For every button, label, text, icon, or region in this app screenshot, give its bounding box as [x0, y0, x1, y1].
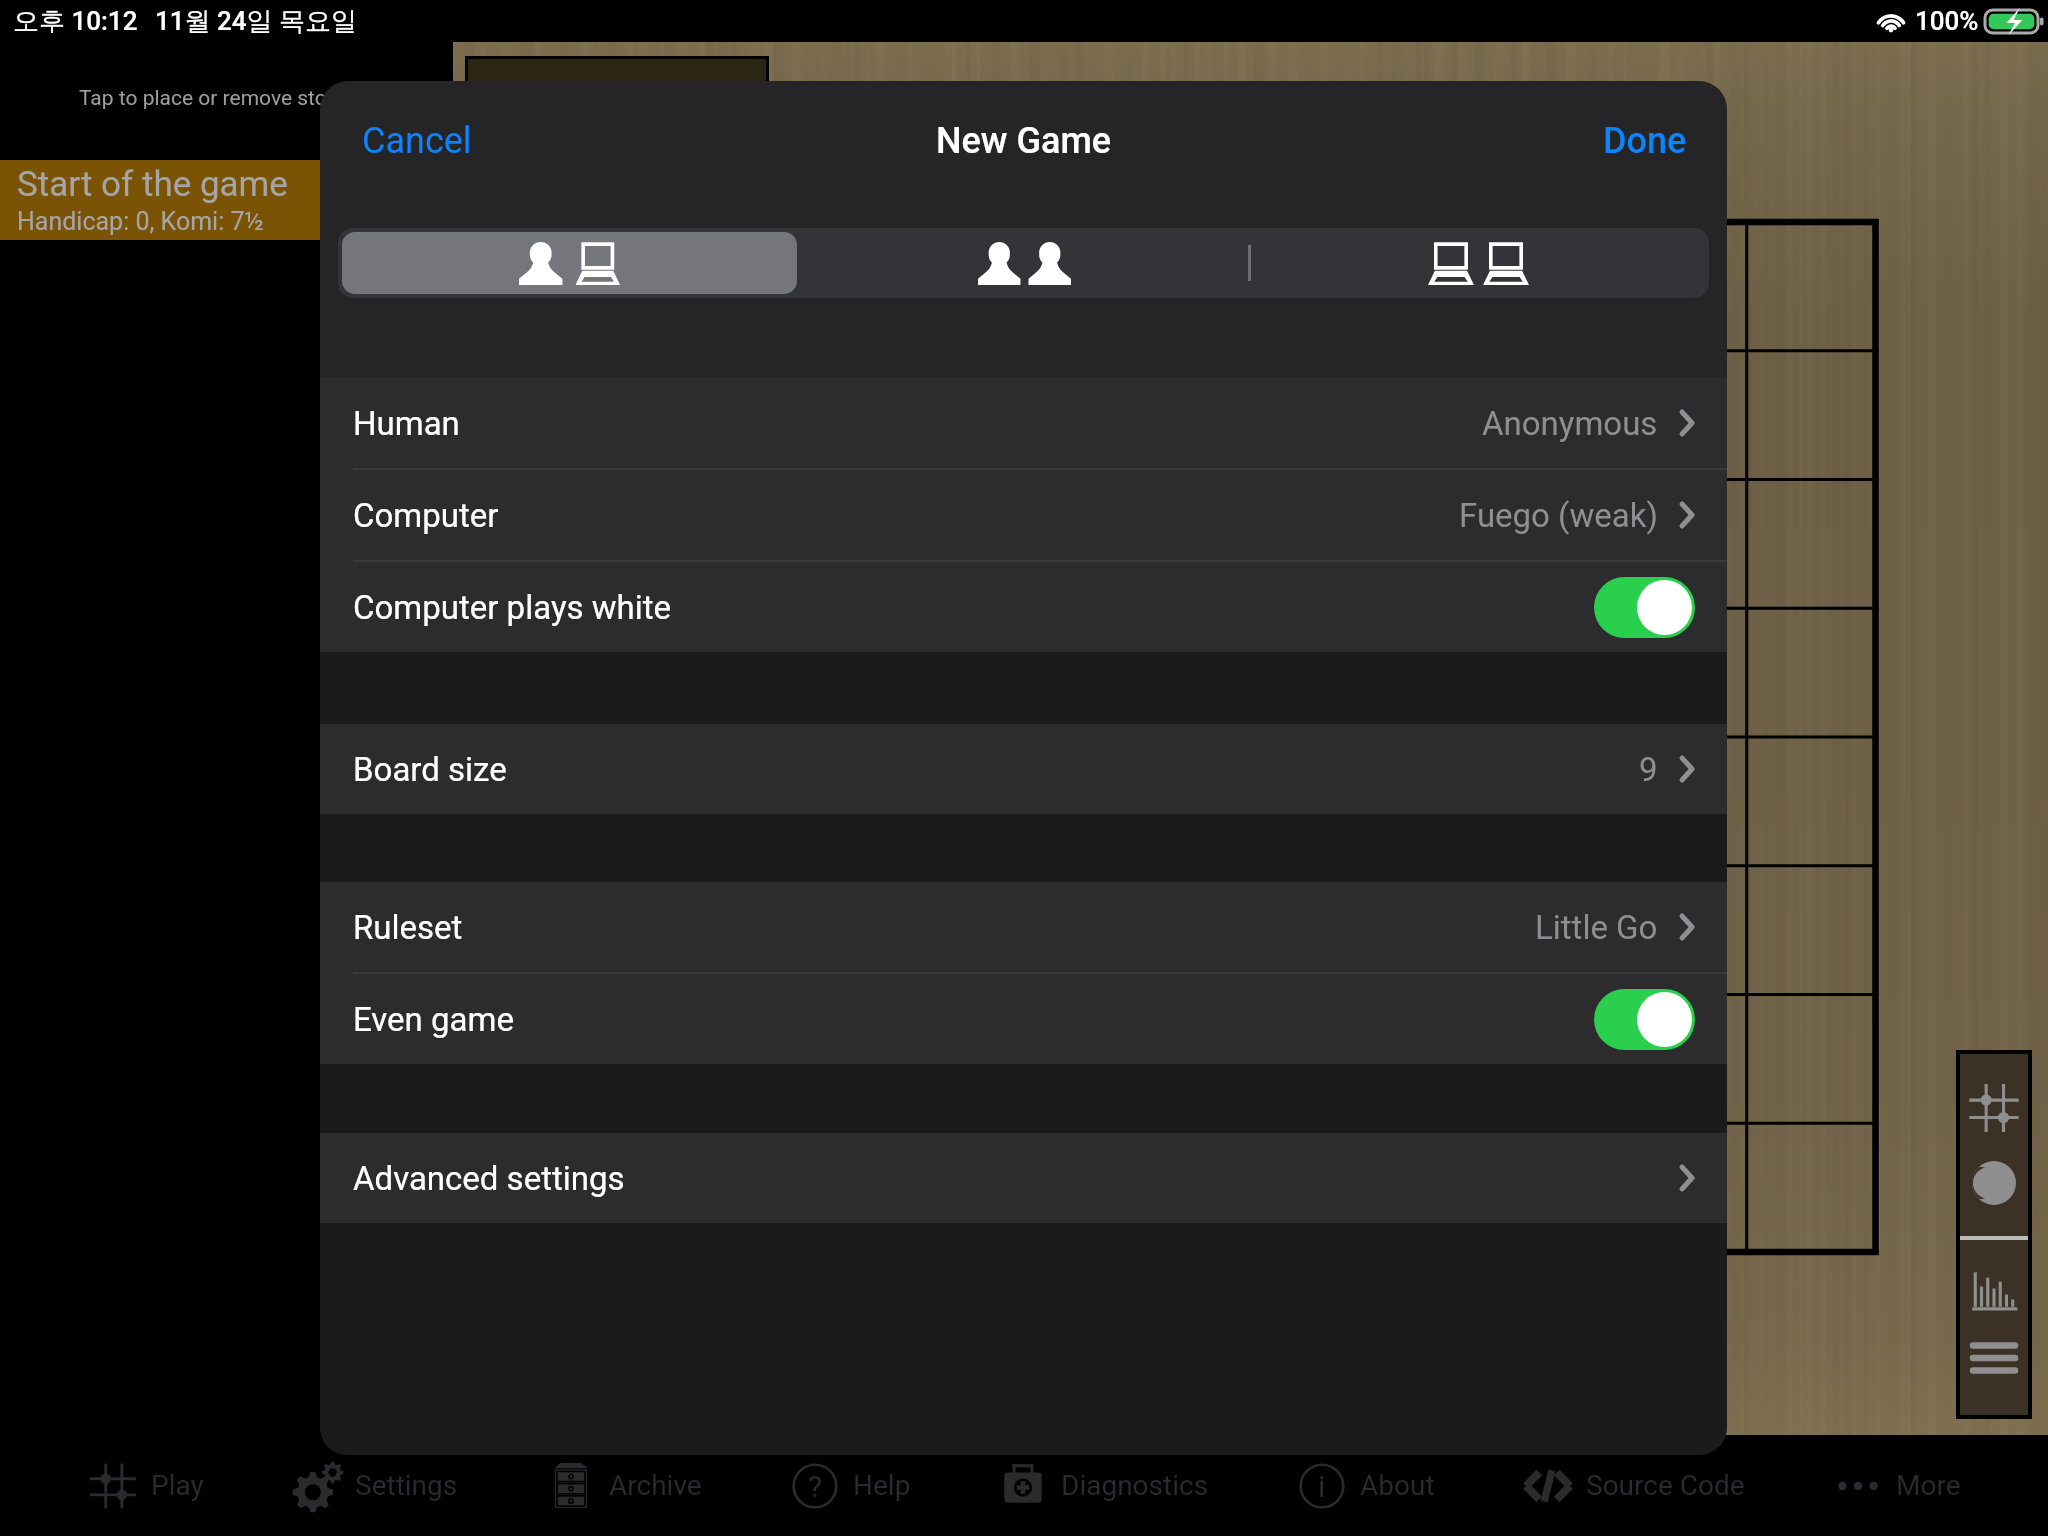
button[interactable]: Cancel: [362, 120, 472, 162]
staticText: Help: [853, 1469, 911, 1502]
button[interactable]: Menu: [1960, 1325, 2028, 1391]
button[interactable]: Source Code: [1522, 1435, 1745, 1536]
staticText: More: [1896, 1469, 1961, 1502]
staticText: Settings: [355, 1469, 458, 1502]
staticText: 9: [1639, 750, 1658, 789]
button[interactable]: Human: [320, 378, 1727, 468]
staticText: Ruleset: [353, 908, 463, 947]
staticText: Even game: [353, 1000, 514, 1039]
button[interactable]: Advanced settings: [320, 1133, 1727, 1223]
staticText: Tap to place or remove stones: [79, 86, 361, 111]
button[interactable]: Play: [1960, 1075, 2028, 1141]
button[interactable]: Stone: [1960, 1150, 2028, 1216]
button[interactable]: Done: [1603, 120, 1687, 162]
button[interactable]: Human vs Human: [797, 232, 1251, 294]
staticText: 오후 10:12: [13, 5, 138, 38]
staticText: Play: [151, 1469, 204, 1502]
staticText: 11월 24일 목요일: [155, 5, 358, 38]
button[interactable]: Play: [87, 1435, 204, 1536]
staticText: Board size: [353, 750, 507, 789]
staticText: About: [1360, 1469, 1435, 1502]
staticText: Handicap: 0, Komi: 7½: [17, 207, 264, 236]
staticText: Computer plays white: [353, 588, 672, 627]
staticText: Source Code: [1586, 1469, 1745, 1502]
button[interactable]: Statistics: [1960, 1254, 2028, 1320]
button[interactable]: Settings: [291, 1435, 458, 1536]
staticText: New Game: [936, 120, 1112, 162]
staticText: Diagnostics: [1061, 1469, 1209, 1502]
staticText: 100%: [1915, 6, 1979, 36]
staticText: Little Go: [1535, 908, 1658, 947]
staticText: Computer: [353, 496, 499, 535]
button[interactable]: Ruleset: [320, 882, 1727, 972]
button[interactable]: Archive: [545, 1435, 702, 1536]
staticText: i: [1318, 1469, 1326, 1504]
button[interactable]: Diagnostics: [997, 1435, 1209, 1536]
button[interactable]: i: [1296, 1435, 1435, 1536]
staticText: Done: [1603, 120, 1687, 162]
staticText: Human: [353, 404, 460, 443]
staticText: Fuego (weak): [1459, 496, 1658, 535]
staticText: Archive: [609, 1469, 702, 1502]
button[interactable]: More: [1832, 1435, 1961, 1536]
staticText: Advanced settings: [353, 1159, 625, 1198]
button[interactable]: Computer vs Computer: [1251, 232, 1705, 294]
button[interactable]: Computer: [320, 470, 1727, 560]
button[interactable]: ?: [789, 1435, 911, 1536]
staticText: Cancel: [362, 120, 472, 162]
staticText: Start of the game: [17, 164, 288, 205]
button[interactable]: Even game: [320, 974, 1727, 1064]
button[interactable]: Computer plays white: [320, 562, 1727, 652]
staticText: Anonymous: [1482, 404, 1658, 443]
button[interactable]: Human vs Computer: [342, 232, 797, 294]
staticText: ?: [808, 1469, 823, 1504]
button[interactable]: Board size: [320, 724, 1727, 814]
